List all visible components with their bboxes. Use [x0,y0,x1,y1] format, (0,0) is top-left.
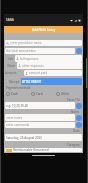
button[interactable]: enter comments [5,122,75,128]
staticText: Card [36,92,43,96]
staticText: Receipt [9,80,20,84]
button[interactable]: enter notes [5,114,75,121]
staticText: 14:56 [6,18,14,22]
button[interactable]: other expenses [17,62,82,69]
staticText: Other [7,64,16,68]
button[interactable]: full expenses [15,55,82,62]
staticText: Other [61,92,70,96]
staticText: Category [67,143,80,147]
button[interactable]: Card [31,90,56,97]
staticText: full expenses [20,57,39,61]
staticText: enter comments [6,123,30,127]
button[interactable]: Open picker [76,48,82,54]
staticText: enter procedure name [10,41,42,45]
button[interactable]: Cash [6,90,31,97]
staticText: Saturday, 26 August 2023 [6,136,42,140]
button[interactable]: Saturday, 26 August 2023 [5,134,82,141]
staticText: amount paid [29,71,48,75]
staticText: other expenses [22,64,44,68]
staticText: ATTACHMENT [22,80,42,84]
button[interactable]: e.g. 10,20,30.40 [5,102,75,109]
staticText: Reimbursable (Insurance) [13,148,50,152]
button[interactable]: Open picker [76,122,82,128]
button[interactable]: Open picker [76,103,82,109]
staticText: the total amount due [6,49,36,53]
staticText: Cash [11,92,18,96]
button[interactable]: the total amount due [5,48,75,54]
button[interactable]: ATTACHMENT [21,78,82,85]
button[interactable]: amount paid [24,70,82,76]
staticText: Payment method [6,86,31,90]
staticText: Lab [8,57,14,61]
button[interactable]: Other [56,90,81,97]
staticText: Date [73,129,80,133]
staticText: Add/Edit Entry [32,27,56,32]
staticText: Notes [71,110,80,114]
button[interactable]: Open picker [76,115,82,121]
button[interactable]: Reimbursable (Insurance) [5,148,82,152]
staticText: e.g. 10,20,30.40 [6,104,29,108]
button[interactable]: enter procedure name [5,40,82,46]
staticText: enter notes [6,116,23,120]
staticText: Taxes (%) [67,98,80,102]
staticText: Amount paid [5,71,23,75]
